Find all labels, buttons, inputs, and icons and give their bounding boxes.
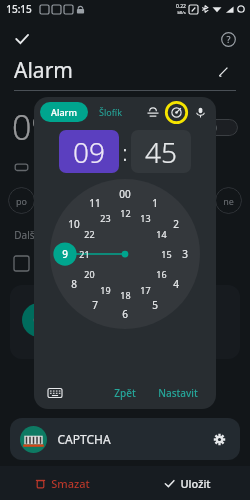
staticText: kB/s	[177, 10, 186, 15]
staticText: 9	[62, 247, 68, 261]
staticText: 18	[120, 289, 131, 301]
staticText: 22	[84, 228, 95, 240]
staticText: Zpět	[114, 386, 136, 400]
staticText: Alarm	[51, 106, 77, 118]
button[interactable]: Smazat	[0, 466, 125, 500]
staticText: 0.22	[176, 3, 186, 10]
button[interactable]: Šlofík	[93, 102, 128, 122]
staticText: 11	[89, 196, 101, 210]
staticText: 4	[173, 277, 179, 291]
staticText: :	[122, 137, 128, 167]
button[interactable]	[10, 285, 240, 359]
staticText: 1	[152, 196, 158, 210]
staticText: 09	[73, 133, 105, 171]
staticText: 23	[100, 212, 111, 224]
button[interactable]: 09	[59, 130, 119, 173]
staticText: 00	[119, 187, 131, 201]
button[interactable]: Alarm	[40, 102, 88, 122]
button[interactable]: Zpět	[106, 381, 144, 405]
button[interactable]: ne	[215, 187, 242, 214]
staticText: po	[16, 195, 27, 207]
button[interactable]: Uložit	[125, 466, 250, 500]
button[interactable]: Edit name	[210, 58, 236, 84]
staticText: 12	[120, 207, 131, 219]
staticText: Smazat	[51, 476, 90, 491]
staticText: Nastavit	[158, 386, 198, 400]
staticText: CAPTCHA	[57, 431, 111, 447]
staticText: 8	[71, 277, 77, 291]
staticText: 16	[156, 268, 167, 280]
button[interactable]: Confirm	[5, 22, 39, 56]
staticText: 15	[161, 248, 172, 260]
button[interactable]: st	[77, 187, 104, 214]
button[interactable]: po	[8, 187, 35, 214]
staticText: 45	[145, 133, 177, 171]
staticText: 6	[122, 307, 128, 321]
staticText: 15:15	[6, 2, 32, 16]
button[interactable]: CAPTCHA	[10, 418, 240, 460]
staticText: 17	[140, 284, 151, 296]
staticText: 2	[173, 217, 179, 231]
button[interactable]	[204, 119, 238, 136]
staticText: ne	[223, 195, 234, 207]
staticText: čt	[122, 195, 130, 207]
button[interactable]: pá	[146, 187, 173, 214]
staticText: Uložit	[180, 476, 211, 491]
staticText: 09:45	[12, 104, 98, 150]
staticText: 5	[152, 298, 158, 312]
button[interactable]: Help	[211, 22, 245, 56]
staticText: Další alarm za 18 hodin	[14, 228, 124, 242]
button[interactable]: Settings	[208, 428, 230, 450]
staticText: 14	[156, 228, 167, 240]
staticText: st	[87, 195, 95, 207]
button[interactable]: Nastavit	[150, 381, 206, 405]
staticText: 10	[68, 217, 80, 231]
staticText: Šlofík	[99, 106, 122, 118]
staticText: 19	[100, 284, 111, 296]
button[interactable]: Voice	[190, 102, 210, 122]
button[interactable]: 45	[131, 130, 191, 173]
staticText: Alarm	[14, 56, 73, 85]
staticText: 20	[84, 268, 95, 280]
staticText: 3	[182, 247, 188, 261]
button[interactable]: Timer	[165, 101, 188, 124]
staticText: ?	[226, 33, 231, 45]
button[interactable]: Keyboard input	[44, 382, 66, 404]
staticText: pá	[154, 195, 165, 207]
button[interactable]: Gradual volume	[143, 102, 163, 122]
staticText: 13	[140, 212, 151, 224]
staticText: 21	[79, 248, 90, 260]
button[interactable]: čt	[112, 187, 139, 214]
staticText: 7	[92, 298, 98, 312]
